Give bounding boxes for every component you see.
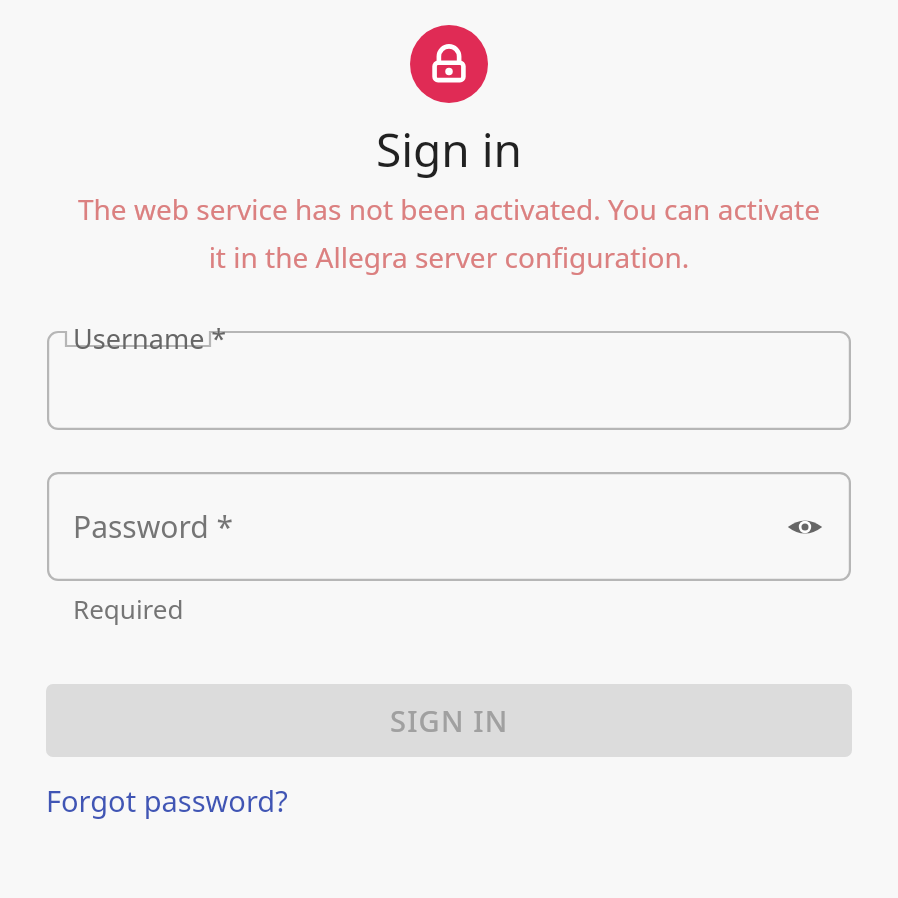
button[interactable]: Show password xyxy=(777,499,833,555)
staticText: The web service has not been activated. … xyxy=(70,190,828,276)
staticText: SIGN IN xyxy=(390,701,509,740)
button[interactable]: Password * xyxy=(47,472,851,581)
staticText: Required xyxy=(73,591,184,626)
staticText: Forgot password? xyxy=(46,781,288,820)
button[interactable]: Forgot password? xyxy=(44,777,290,824)
button[interactable]: Username * xyxy=(47,320,851,430)
staticText: Password * xyxy=(73,506,234,547)
staticText: Sign in xyxy=(0,118,898,181)
button[interactable]: SIGN IN xyxy=(46,684,852,757)
staticText: Username * xyxy=(73,320,227,357)
other: Locked xyxy=(410,25,488,103)
